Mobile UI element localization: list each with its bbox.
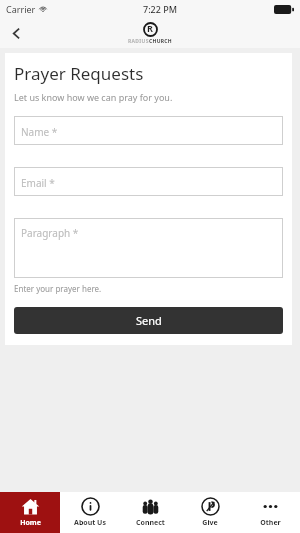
button[interactable]: Name * bbox=[14, 116, 283, 145]
staticText: Other bbox=[260, 518, 281, 528]
button[interactable]: Other bbox=[240, 492, 300, 533]
button[interactable]: Give bbox=[180, 492, 240, 533]
button[interactable]: Paragraph * bbox=[14, 218, 283, 278]
staticText: About Us bbox=[74, 518, 106, 528]
staticText: Name * bbox=[21, 125, 58, 139]
staticText: Connect bbox=[136, 518, 165, 528]
button[interactable]: Send bbox=[14, 307, 283, 334]
staticText: Paragraph * bbox=[21, 226, 79, 240]
button[interactable]: Connect bbox=[120, 492, 180, 533]
staticText: Give bbox=[202, 518, 218, 528]
staticText: CHURCH bbox=[149, 38, 172, 45]
staticText: Home bbox=[20, 518, 41, 528]
staticText: Carrier bbox=[6, 3, 36, 15]
staticText: Prayer Requests bbox=[14, 62, 144, 85]
staticText: Let us know how we can pray for you. bbox=[14, 91, 173, 103]
staticText: RADIUS bbox=[128, 38, 149, 45]
button[interactable]: Home bbox=[0, 492, 60, 533]
staticText: Email * bbox=[21, 176, 55, 190]
staticText: 7:22 PM bbox=[143, 3, 177, 15]
staticText: Send bbox=[136, 313, 162, 328]
staticText: Enter your prayer here. bbox=[14, 283, 102, 294]
button[interactable]: Back bbox=[0, 18, 32, 48]
button[interactable]: About Us bbox=[60, 492, 120, 533]
button[interactable]: Email * bbox=[14, 167, 283, 196]
staticText: R bbox=[147, 22, 153, 34]
